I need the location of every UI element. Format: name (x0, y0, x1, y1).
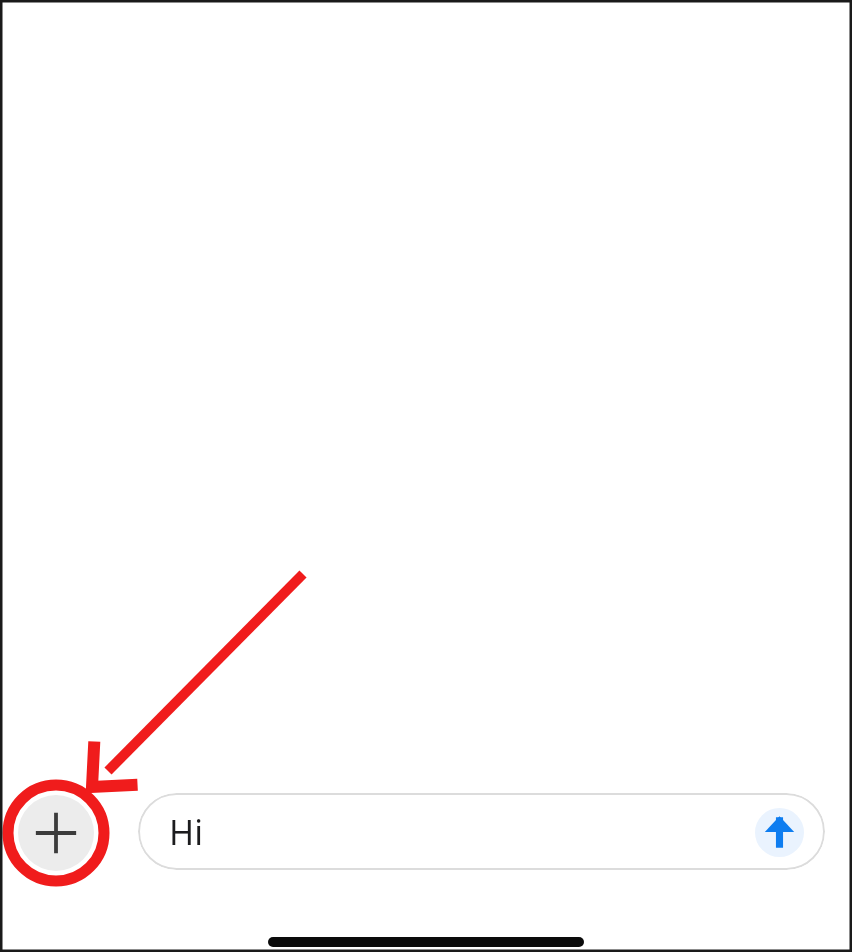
button[interactable] (138, 793, 825, 870)
button[interactable]: Add attachment (18, 795, 94, 871)
button[interactable]: Send (755, 808, 804, 857)
